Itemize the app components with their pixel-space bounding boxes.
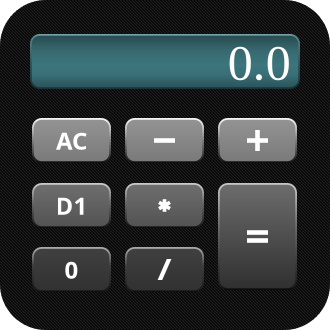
button[interactable]: D1 <box>32 183 111 228</box>
button[interactable]: Plus <box>218 118 297 163</box>
staticText: D1 <box>55 190 87 221</box>
button[interactable]: All clear <box>32 118 111 163</box>
button[interactable]: Equals <box>218 183 297 290</box>
staticText: 0 <box>64 254 78 285</box>
staticText: 0.0 <box>228 35 291 91</box>
button[interactable]: Minus <box>125 118 204 163</box>
button[interactable]: Multiply <box>125 183 204 228</box>
staticText: AC <box>56 125 87 156</box>
button[interactable]: Divide <box>125 247 204 292</box>
button[interactable]: Zero <box>32 247 111 292</box>
